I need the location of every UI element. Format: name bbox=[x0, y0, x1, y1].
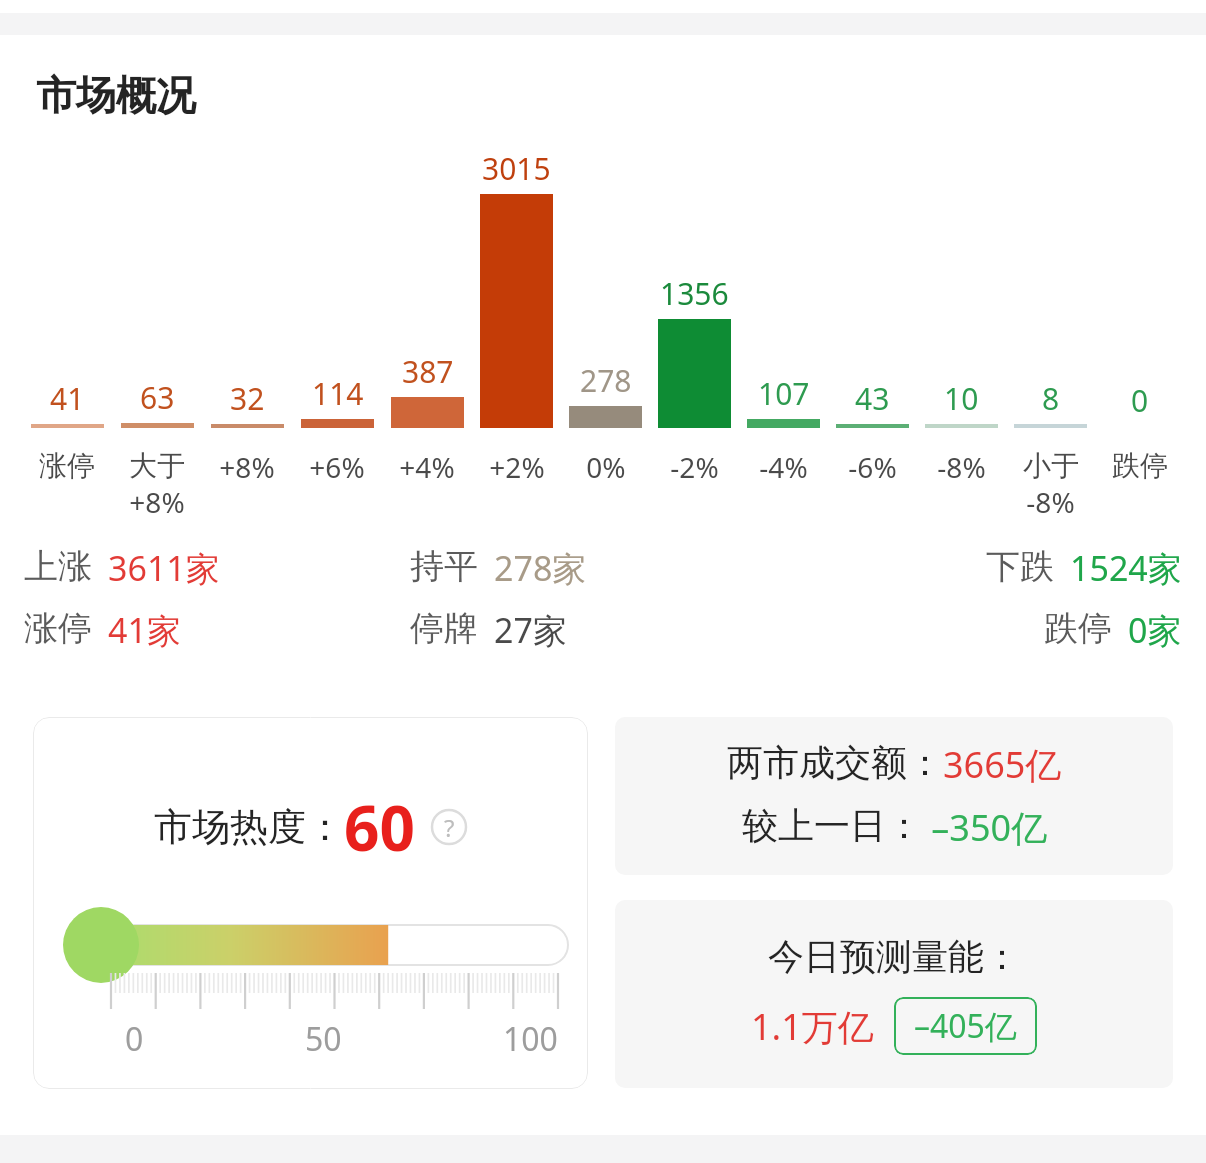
staticText: –405亿 bbox=[914, 1004, 1017, 1048]
staticText: 3665亿 bbox=[943, 740, 1062, 789]
staticText: 下跌 bbox=[986, 545, 1054, 588]
staticText: 0% bbox=[586, 448, 626, 486]
button[interactable]: 帮助说明 bbox=[431, 809, 467, 845]
staticText: 0家 bbox=[1128, 607, 1182, 653]
staticText: 43 bbox=[855, 378, 890, 419]
staticText: 跌停 bbox=[1112, 448, 1168, 483]
staticText: 114 bbox=[312, 373, 364, 414]
staticText: -4% bbox=[759, 448, 808, 486]
staticText: 上涨 bbox=[24, 545, 92, 588]
button[interactable]: 今日预测量能： bbox=[615, 900, 1173, 1088]
button[interactable]: 两市成交额： bbox=[615, 717, 1173, 875]
staticText: +4% bbox=[399, 448, 455, 486]
staticText: 涨停 bbox=[24, 607, 92, 650]
staticText: 387 bbox=[402, 351, 454, 392]
staticText: 278 bbox=[580, 360, 632, 401]
staticText: 41 bbox=[50, 378, 85, 419]
staticText: 63 bbox=[140, 377, 175, 418]
staticText: 8 bbox=[1042, 378, 1060, 419]
staticText: 107 bbox=[758, 373, 810, 414]
staticText: 1.1万亿 bbox=[751, 1002, 874, 1051]
staticText: 两市成交额： bbox=[727, 740, 943, 785]
staticText: -6% bbox=[848, 448, 897, 486]
staticText: -8% bbox=[1026, 483, 1075, 521]
staticText: 100 bbox=[503, 1017, 558, 1061]
staticText: 停牌 bbox=[410, 607, 478, 650]
staticText: 1356 bbox=[660, 273, 729, 314]
staticText: 市场热度： bbox=[154, 803, 344, 851]
staticText: 小于 bbox=[1023, 448, 1079, 483]
staticText: -2% bbox=[670, 448, 719, 486]
staticText: 3015 bbox=[482, 148, 551, 189]
staticText: 60 bbox=[344, 785, 415, 869]
staticText: 市场概况 bbox=[36, 70, 196, 120]
staticText: -8% bbox=[937, 448, 986, 486]
staticText: –350亿 bbox=[922, 803, 1048, 852]
staticText: 大于 bbox=[129, 448, 185, 483]
staticText: +2% bbox=[489, 448, 545, 486]
staticText: 10 bbox=[944, 378, 979, 419]
staticText: 跌停 bbox=[1044, 607, 1112, 650]
staticText: 27家 bbox=[494, 607, 567, 653]
staticText: 持平 bbox=[410, 545, 478, 588]
staticText: 50 bbox=[305, 1017, 342, 1061]
staticText: 今日预测量能： bbox=[768, 934, 1020, 979]
staticText: 涨停 bbox=[39, 448, 95, 483]
staticText: 较上一日： bbox=[742, 803, 922, 848]
staticText: 32 bbox=[230, 378, 265, 419]
staticText: +6% bbox=[309, 448, 365, 486]
staticText: +8% bbox=[129, 483, 185, 521]
staticText: 0 bbox=[1131, 380, 1149, 421]
staticText: 3611家 bbox=[108, 545, 220, 591]
staticText: 1524家 bbox=[1070, 545, 1182, 591]
staticText: 278家 bbox=[494, 545, 587, 591]
button[interactable]: 市场热度： bbox=[33, 717, 588, 1089]
staticText: ? bbox=[444, 811, 455, 844]
staticText: +8% bbox=[219, 448, 275, 486]
staticText: 0 bbox=[125, 1017, 144, 1061]
staticText: 41家 bbox=[108, 607, 181, 653]
